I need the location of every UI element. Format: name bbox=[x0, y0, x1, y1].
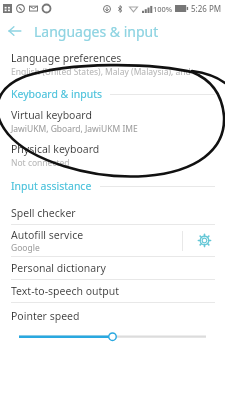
staticText: Personal dictionary bbox=[11, 261, 106, 275]
staticText: 100% bbox=[153, 4, 173, 14]
staticText: Google bbox=[11, 242, 40, 254]
staticText: Keyboard & inputs bbox=[11, 87, 102, 101]
button[interactable]: Autofill settings bbox=[183, 225, 225, 256]
staticText: Language preferences bbox=[11, 51, 122, 65]
button[interactable]: Pointer speed bbox=[0, 303, 225, 346]
button[interactable]: Autofill service bbox=[0, 228, 182, 254]
button[interactable]: Text-to-speech output bbox=[0, 280, 225, 302]
staticText: English (United States), Malay (Malaysia… bbox=[11, 66, 191, 78]
staticText: JawiUKM, Gboard, JawiUKM IME bbox=[11, 123, 138, 135]
button[interactable]: Language preferences bbox=[0, 51, 225, 78]
staticText: 5:26 PM bbox=[191, 3, 222, 14]
button[interactable]: Back bbox=[0, 17, 30, 45]
staticText: Languages & input bbox=[34, 22, 159, 41]
staticText: Input assistance bbox=[11, 179, 92, 193]
staticText: Pointer speed bbox=[11, 309, 80, 323]
staticText: Spell checker bbox=[11, 206, 76, 220]
button[interactable]: Virtual keyboard bbox=[0, 108, 225, 135]
staticText: Not connected bbox=[11, 157, 70, 169]
button[interactable]: Spell checker bbox=[0, 202, 225, 224]
staticText: Text-to-speech output bbox=[11, 284, 120, 298]
staticText: Autofill service bbox=[11, 228, 84, 242]
button[interactable]: Physical keyboard bbox=[0, 142, 225, 169]
staticText: Physical keyboard bbox=[11, 142, 100, 156]
staticText: Virtual keyboard bbox=[11, 108, 92, 122]
button[interactable]: Personal dictionary bbox=[0, 257, 225, 279]
